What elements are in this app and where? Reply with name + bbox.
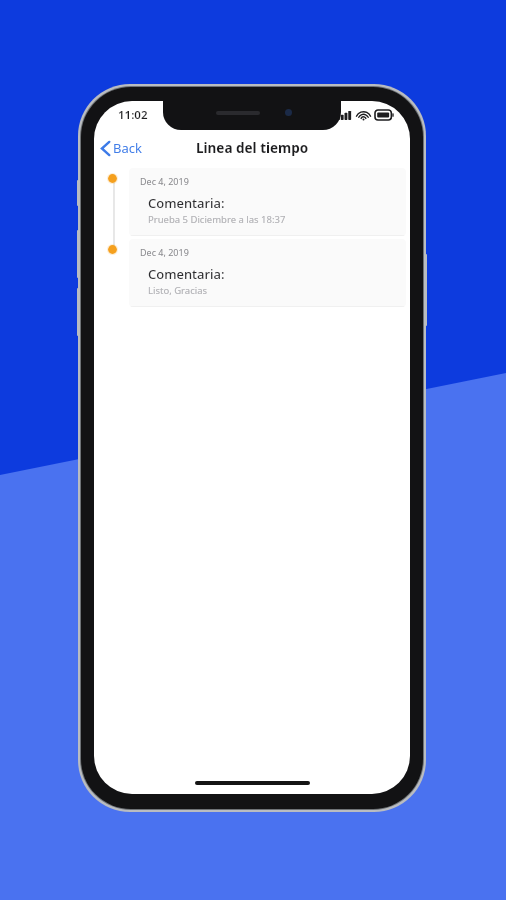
staticText: Prueba 5 Diciembre a las 18:37 — [148, 213, 286, 226]
staticText: Linea del tiempo — [196, 139, 309, 157]
staticText: 11:02 — [118, 107, 148, 123]
staticText: Back — [113, 139, 142, 157]
button[interactable]: Back — [94, 135, 152, 161]
staticText: Dec 4, 2019 — [140, 175, 189, 187]
button[interactable]: Dec 4, 2019 — [94, 168, 410, 236]
staticText: Dec 4, 2019 — [140, 246, 189, 258]
button[interactable]: Dec 4, 2019 — [94, 239, 410, 307]
staticText: Listo, Gracias — [148, 284, 208, 297]
staticText: Comentaria: — [148, 265, 225, 283]
staticText: Comentaria: — [148, 194, 225, 212]
